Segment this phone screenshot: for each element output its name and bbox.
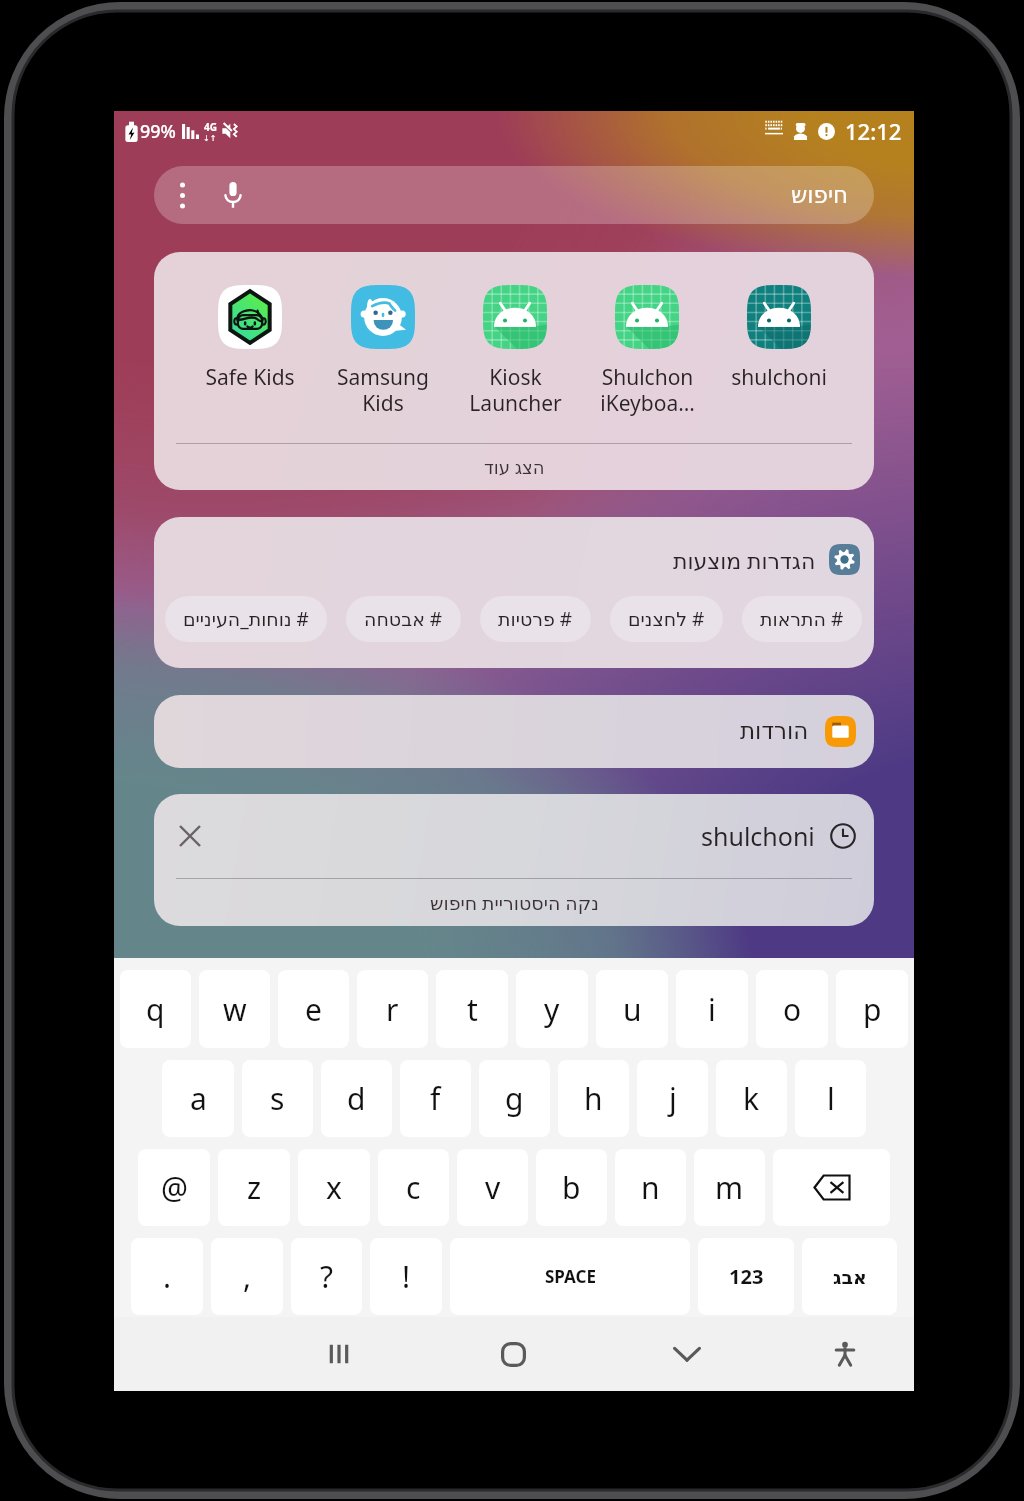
button[interactable]: Backspace [773, 1149, 890, 1226]
staticText: 99% [140, 119, 176, 144]
button[interactable]: o [756, 970, 828, 1048]
staticText: z [247, 1167, 262, 1208]
button[interactable]: t [436, 970, 508, 1048]
staticText: הורדות [740, 718, 809, 745]
button[interactable]: נקה היסטוריית חיפוש [154, 879, 874, 926]
staticText: p [863, 989, 882, 1030]
button[interactable]: ! [370, 1238, 442, 1315]
button[interactable]: ‏# לחצנים [610, 596, 723, 642]
staticText: u [623, 989, 642, 1030]
button[interactable]: , [211, 1238, 283, 1315]
staticText: shulchoni [731, 363, 827, 392]
button[interactable]: Recents [304, 1317, 374, 1391]
button[interactable]: 123 [698, 1238, 794, 1315]
staticText: ‏# פרטיות [498, 606, 573, 632]
button[interactable]: ‏# התראות [742, 596, 862, 642]
button[interactable]: p [836, 970, 908, 1048]
button[interactable]: Samsung Kids [316, 285, 449, 418]
button[interactable]: Shulchon iKeyboa… [581, 285, 713, 418]
staticText: ↓↑ [203, 134, 217, 142]
button[interactable]: הורדות [154, 695, 874, 768]
button[interactable]: h [558, 1060, 629, 1137]
button[interactable]: אבג [802, 1238, 897, 1315]
button[interactable]: y [516, 970, 588, 1048]
button[interactable]: ? [291, 1238, 362, 1315]
button[interactable]: q [120, 970, 191, 1048]
staticText: @ [161, 1167, 188, 1208]
other: Voice search [224, 182, 242, 208]
other: Remove [180, 826, 200, 846]
button[interactable]: ‏# פרטיות [480, 596, 591, 642]
button[interactable]: f [400, 1060, 471, 1137]
staticText: 12:12 [845, 116, 902, 146]
staticText: o [783, 989, 802, 1030]
staticText: n [641, 1167, 660, 1208]
staticText: m [715, 1167, 744, 1208]
staticText: w [223, 989, 247, 1030]
staticText: d [347, 1078, 366, 1119]
staticText: ! [402, 1256, 411, 1297]
button[interactable]: n [615, 1149, 686, 1226]
button[interactable]: Home [478, 1317, 548, 1391]
button[interactable]: i [676, 970, 748, 1048]
staticText: i [708, 989, 716, 1030]
staticText: y [544, 989, 560, 1030]
staticText: SPACE [545, 1265, 596, 1288]
button[interactable]: shulchoni [713, 285, 845, 392]
button[interactable]: v [457, 1149, 528, 1226]
button[interactable]: הצג עוד [154, 444, 874, 490]
button[interactable]: w [199, 970, 270, 1048]
button[interactable]: SPACE [450, 1238, 690, 1315]
staticText: 123 [729, 1263, 764, 1290]
button[interactable]: e [278, 970, 349, 1048]
button[interactable]: Remove [180, 794, 856, 878]
staticText: . [163, 1256, 172, 1297]
staticText: g [505, 1078, 524, 1119]
button[interactable]: @ [138, 1149, 210, 1226]
button[interactable]: u [596, 970, 668, 1048]
staticText: l [827, 1078, 835, 1119]
staticText: Samsung Kids [337, 363, 429, 418]
button[interactable]: Settings [829, 544, 860, 575]
staticText: Safe Kids [205, 363, 295, 392]
button[interactable]: m [694, 1149, 765, 1226]
staticText: , [243, 1256, 252, 1297]
button[interactable]: ‏# נוחות_העיניים [165, 596, 327, 642]
staticText: Shulchon iKeyboa… [600, 363, 695, 418]
button[interactable]: b [536, 1149, 607, 1226]
button[interactable]: g [479, 1060, 550, 1137]
other: More options [180, 183, 185, 208]
button[interactable]: c [378, 1149, 449, 1226]
button[interactable]: l [795, 1060, 866, 1137]
staticText: אבג [833, 1266, 867, 1288]
button[interactable]: k [716, 1060, 787, 1137]
staticText: ‏# נוחות_העיניים [183, 606, 309, 632]
button[interactable]: Accessibility [810, 1317, 880, 1391]
button[interactable]: j [637, 1060, 708, 1137]
staticText: ‏# התראות [760, 606, 844, 632]
staticText: חיפוש [791, 182, 849, 209]
button[interactable]: z [218, 1149, 290, 1226]
button[interactable]: Hide keyboard [652, 1317, 722, 1391]
button[interactable]: More options [154, 166, 874, 224]
staticText: q [146, 989, 165, 1030]
button[interactable]: Kiosk Launcher [449, 285, 581, 418]
staticText: x [326, 1167, 342, 1208]
staticText: ‏# אבטחה [364, 606, 443, 632]
button[interactable]: . [131, 1238, 203, 1315]
button[interactable]: Safe Kids [183, 285, 316, 392]
button[interactable]: s [242, 1060, 313, 1137]
staticText: v [485, 1167, 501, 1208]
button[interactable]: d [321, 1060, 392, 1137]
staticText: j [669, 1078, 677, 1119]
button[interactable]: x [298, 1149, 370, 1226]
button[interactable]: a [162, 1060, 234, 1137]
button[interactable]: ‏# אבטחה [346, 596, 461, 642]
staticText: ‏# לחצנים [628, 606, 705, 632]
staticText: הצג עוד [484, 455, 545, 480]
other: Backspace [813, 1174, 851, 1201]
button[interactable]: r [357, 970, 428, 1048]
staticText: הגדרות מוצעות [673, 545, 816, 575]
staticText: b [562, 1167, 581, 1208]
staticText: h [584, 1078, 603, 1119]
